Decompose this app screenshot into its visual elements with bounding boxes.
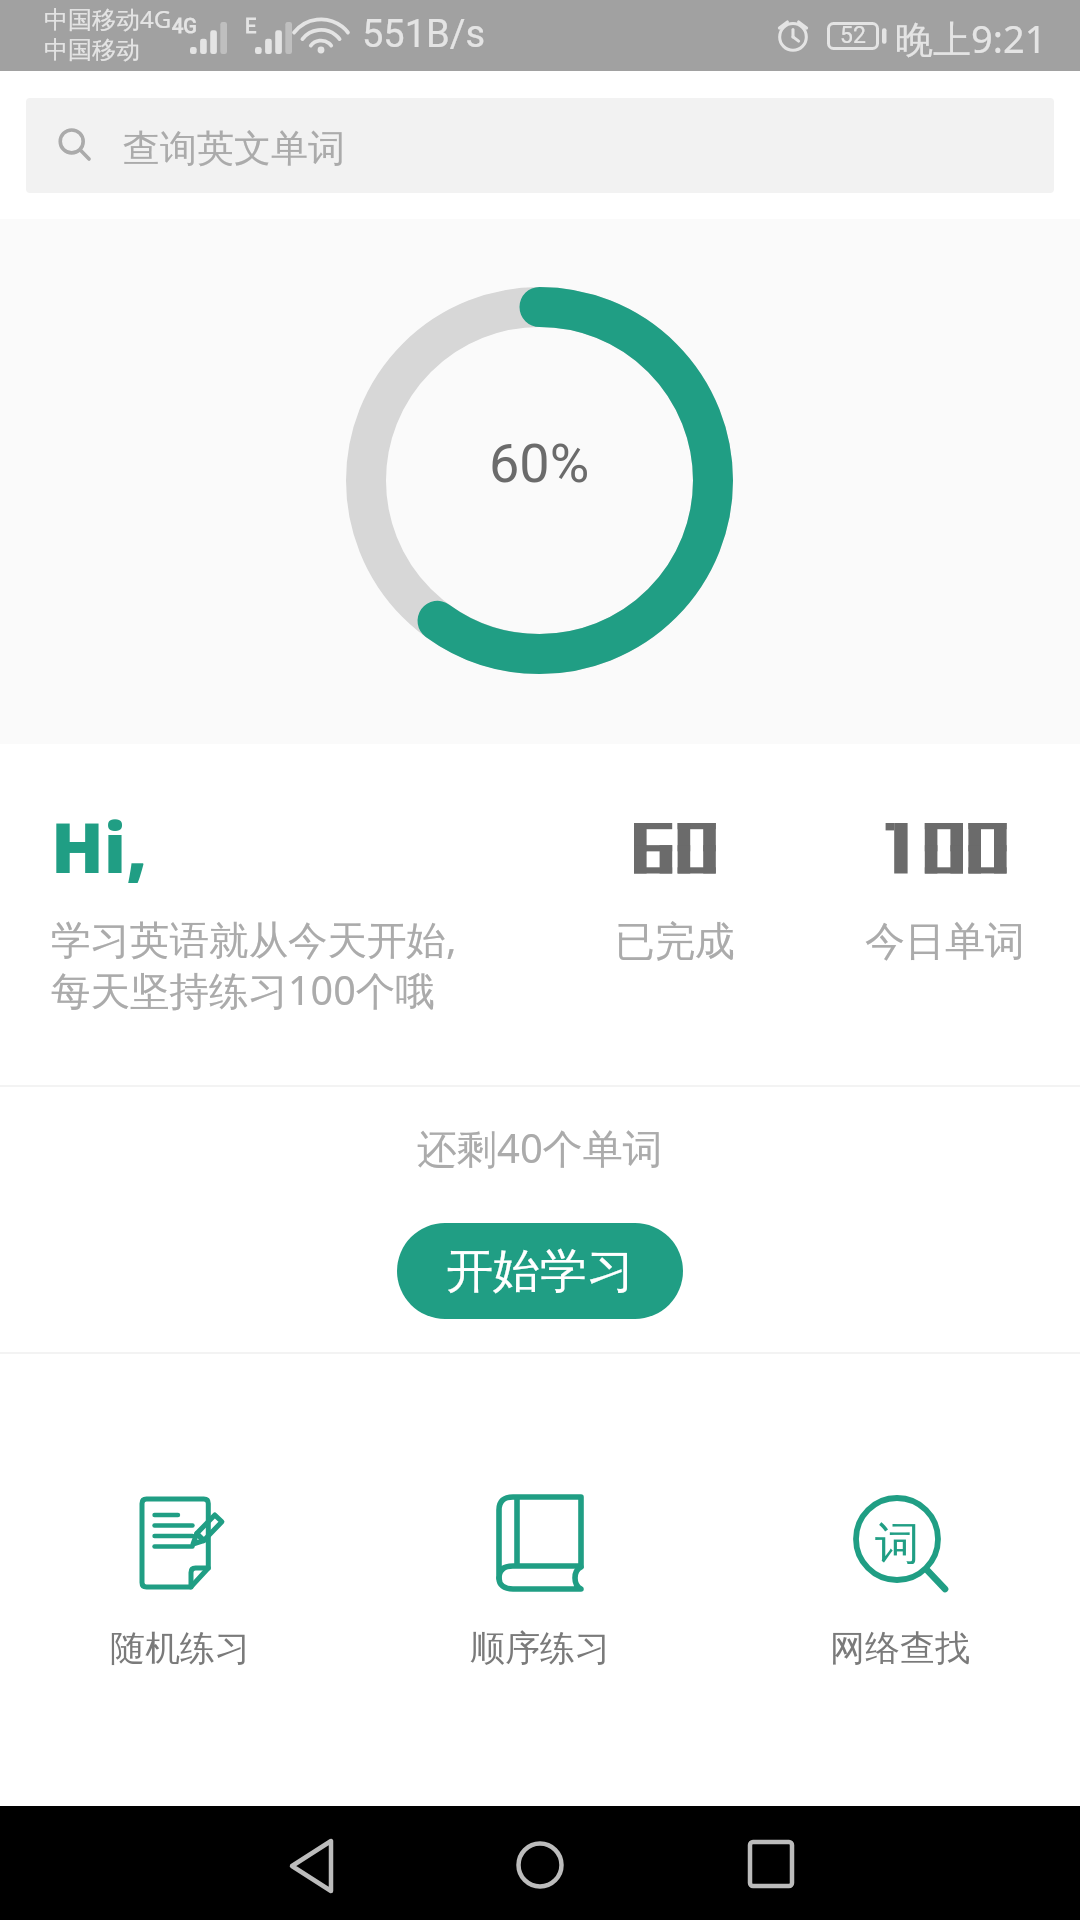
staticText: 中国移动4G xyxy=(44,2,172,35)
staticText: 还剩40个单词 xyxy=(417,1120,663,1175)
staticText: 中国移动 xyxy=(44,35,140,65)
staticText: 551B/s xyxy=(362,12,486,57)
staticText: 词 xyxy=(875,1516,920,1564)
button[interactable]: 顺序练习 xyxy=(360,1478,720,1670)
staticText: 4G xyxy=(172,14,197,37)
staticText: 顺序练习 xyxy=(470,1626,610,1670)
staticText: 随机练习 xyxy=(110,1626,250,1670)
other: Alarm xyxy=(775,16,811,52)
staticText: 60% xyxy=(489,432,590,495)
button[interactable]: Back xyxy=(251,1816,371,1916)
button[interactable]: 查询英文单词 xyxy=(26,98,1054,193)
other: Battery 52 percent xyxy=(827,22,887,50)
staticText: 今日单词 xyxy=(865,916,1025,966)
staticText: 网络查找 xyxy=(830,1626,970,1670)
staticText: 查询英文单词 xyxy=(123,125,345,172)
button[interactable]: 开始学习 xyxy=(397,1223,683,1319)
staticText: 开始学习 xyxy=(446,1242,634,1301)
staticText: 学习英语就从今天开始, 每天坚持练习100个哦 xyxy=(51,912,457,1017)
button[interactable]: 随机练习 xyxy=(0,1478,360,1670)
button[interactable]: Home xyxy=(480,1815,600,1915)
staticText: Hi, xyxy=(51,799,148,893)
staticText: E xyxy=(245,14,257,37)
button[interactable]: 词 xyxy=(720,1478,1080,1670)
staticText: 晚上9:21 xyxy=(895,12,1047,64)
staticText: 52 xyxy=(840,22,866,49)
button[interactable]: Recents xyxy=(711,1814,831,1914)
staticText: 已完成 xyxy=(615,916,735,966)
